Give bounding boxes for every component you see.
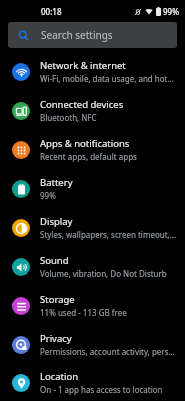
staticText: On - 1 app has access to location [40, 384, 163, 395]
staticText: Sound [40, 254, 69, 267]
staticText: 99% [40, 190, 56, 201]
staticText: Storage [40, 293, 75, 306]
staticText: Display [40, 215, 73, 228]
staticText: Styles, wallpapers, screen timeout, font… [40, 229, 177, 240]
button[interactable]: Search settings [8, 22, 177, 48]
staticText: Recent apps, default apps [40, 151, 137, 162]
button[interactable]: Location [0, 364, 185, 401]
staticText: Volume, vibration, Do Not Disturb [40, 268, 167, 279]
staticText: Location [40, 370, 79, 383]
button[interactable]: Privacy [0, 325, 185, 364]
button[interactable]: Battery [0, 169, 185, 208]
staticText: Permissions, account activity, personal … [40, 346, 177, 357]
staticText: Privacy [40, 332, 72, 345]
staticText: Connected devices [40, 98, 124, 111]
staticText: Bluetooth, NFC [40, 112, 97, 123]
button[interactable]: Network & internet [0, 52, 185, 91]
staticText: Search settings [41, 28, 113, 42]
button[interactable]: Display [0, 208, 185, 247]
staticText: Network & internet [40, 59, 126, 72]
staticText: Apps & notifications [40, 137, 130, 150]
button[interactable]: Apps & notifications [0, 130, 185, 169]
button[interactable]: Storage [0, 286, 185, 325]
staticText: 00:18 [41, 6, 62, 17]
button[interactable]: Sound [0, 247, 185, 286]
staticText: 99% [163, 6, 179, 17]
button[interactable]: Connected devices [0, 91, 185, 130]
staticText: Battery [40, 176, 73, 189]
staticText: Wi-Fi, mobile, data usage, and hotspot [40, 73, 177, 84]
staticText: 11% used - 113 GB free [40, 307, 127, 318]
